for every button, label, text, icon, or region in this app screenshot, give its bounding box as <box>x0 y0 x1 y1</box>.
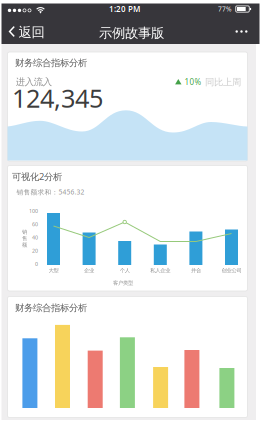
staticText: 100 <box>29 207 38 215</box>
staticText: 10% <box>184 77 201 87</box>
staticText: 财务综合指标分析 <box>15 57 87 69</box>
button[interactable]: More <box>226 20 256 42</box>
staticText: 0 <box>35 260 38 268</box>
staticText: 私人企业 <box>150 267 170 274</box>
button[interactable]: 返回 <box>3 19 47 45</box>
staticText: 企业 <box>84 267 94 274</box>
staticText: 60 <box>32 221 38 228</box>
staticText: 销售额求和：5456.32 <box>16 188 84 196</box>
staticText: 客户类型 <box>113 280 133 286</box>
staticText: 额 <box>22 242 27 248</box>
staticText: 返回 <box>18 24 44 40</box>
staticText: 40 <box>32 234 38 241</box>
staticText: 财务综合指标分析 <box>15 302 87 314</box>
staticText: 示例故事版 <box>99 25 164 41</box>
staticText: 进入流入 <box>16 76 52 88</box>
staticText: 销 <box>22 229 27 235</box>
staticText: 大型 <box>48 267 58 274</box>
staticText: 可视化2分析 <box>12 170 62 183</box>
staticText: 77% <box>218 4 232 13</box>
staticText: 售 <box>22 235 27 242</box>
staticText: 20 <box>32 247 38 254</box>
staticText: 并合 <box>191 267 201 274</box>
staticText: 创业公司 <box>221 267 241 274</box>
staticText: 个人 <box>120 267 130 274</box>
staticText: 同比上周 <box>205 76 241 88</box>
staticText: 124,345 <box>12 81 103 115</box>
staticText: 1:20 PM <box>109 4 140 14</box>
